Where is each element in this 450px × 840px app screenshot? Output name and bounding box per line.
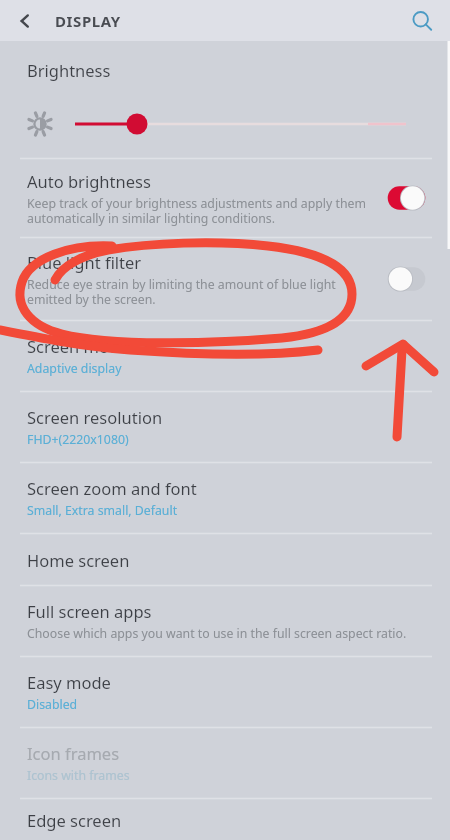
staticText: DISPLAY (55, 11, 121, 31)
button[interactable]: Auto brightness (0, 159, 450, 237)
button[interactable]: Back (6, 2, 44, 40)
staticText: Adaptive display (27, 360, 122, 377)
staticText: FHD+(2220x1080) (27, 431, 129, 448)
staticText: Screen zoom and font (27, 477, 197, 499)
staticText: Reduce eye strain by limiting the amount… (27, 276, 336, 307)
button[interactable]: Auto brightness on (383, 183, 430, 213)
staticText: Easy mode (27, 671, 111, 693)
staticText: Edge screen (27, 809, 122, 831)
staticText: Icon frames (27, 742, 120, 764)
staticText: Choose which apps you want to use in the… (27, 625, 407, 642)
staticText: Small, Extra small, Default (27, 502, 178, 519)
button[interactable]: Search (402, 1, 442, 41)
staticText: Keep track of your brightness adjustment… (27, 195, 366, 226)
button[interactable]: Full screen apps (0, 586, 450, 656)
button[interactable]: Easy mode (0, 657, 450, 727)
button[interactable]: Home screen (0, 534, 450, 585)
staticText: Disabled (27, 696, 78, 713)
staticText: Full screen apps (27, 600, 152, 622)
button[interactable]: Icon frames (0, 728, 450, 798)
staticText: Screen mode (27, 335, 129, 357)
button[interactable]: Blue light filter (0, 238, 450, 320)
staticText: Icons with frames (27, 767, 130, 784)
staticText: Blue light filter (27, 251, 142, 273)
staticText: Screen resolution (27, 406, 163, 428)
staticText: Brightness (27, 59, 111, 81)
staticText: Auto brightness (27, 170, 151, 192)
staticText: Home screen (27, 549, 130, 571)
button[interactable]: Screen mode (0, 321, 450, 391)
button[interactable]: Screen resolution (0, 392, 450, 462)
button[interactable]: Blue light filter off (383, 264, 430, 294)
button[interactable]: Edge screen (0, 799, 450, 840)
button[interactable]: Screen zoom and font (0, 463, 450, 533)
